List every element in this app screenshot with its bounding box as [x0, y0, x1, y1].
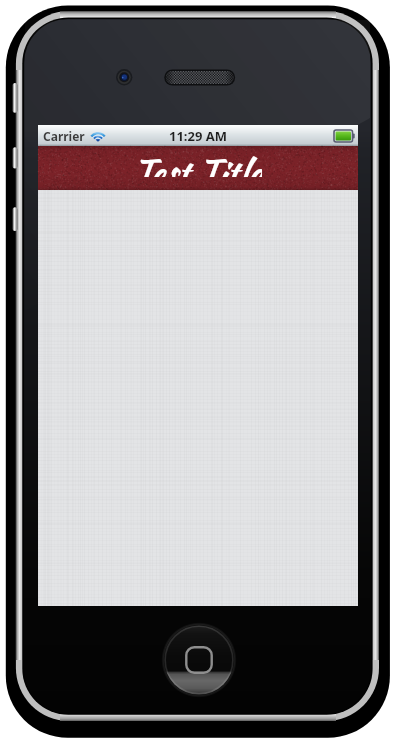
staticText: Test Title [133, 156, 262, 177]
staticText: Carrier [43, 128, 85, 144]
staticText: 11:29 AM [169, 127, 228, 145]
